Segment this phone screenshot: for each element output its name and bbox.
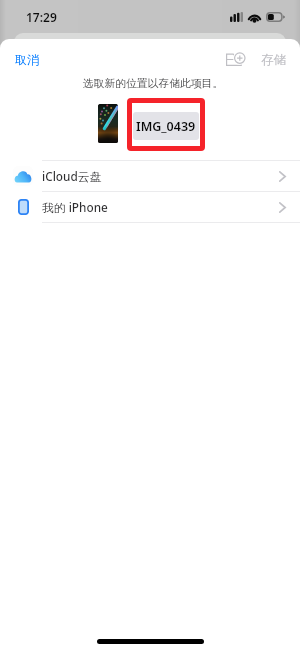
staticText: iCloud云盘: [42, 168, 102, 184]
button[interactable]: 存储: [254, 48, 293, 72]
button[interactable]: iCloud云盘: [0, 161, 300, 191]
staticText: 选取新的位置以存储此项目。: [3, 77, 300, 91]
staticText: 存储: [261, 52, 286, 68]
staticText: 17:29: [26, 9, 57, 25]
button[interactable]: 新建文件夹: [221, 48, 249, 71]
button[interactable]: IMG_0439: [133, 112, 199, 140]
button[interactable]: 我的 iPhone: [0, 192, 300, 222]
staticText: IMG_0439: [136, 118, 196, 135]
staticText: 我的 iPhone: [42, 199, 108, 215]
staticText: 取消: [15, 52, 39, 67]
button[interactable]: 取消: [8, 48, 46, 71]
